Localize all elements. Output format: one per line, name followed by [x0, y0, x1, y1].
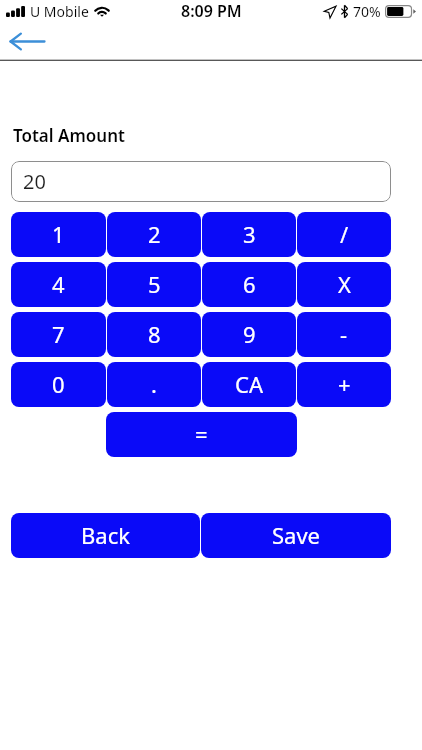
staticText: CA: [235, 369, 263, 399]
button[interactable]: X: [297, 262, 391, 307]
staticText: 7: [52, 319, 65, 349]
staticText: 20: [23, 168, 46, 195]
button[interactable]: 9: [202, 312, 296, 357]
button[interactable]: 0: [11, 362, 106, 407]
button[interactable]: 1: [11, 212, 106, 257]
staticText: X: [338, 269, 351, 299]
staticText: 1: [52, 219, 65, 249]
staticText: /: [340, 219, 349, 249]
button[interactable]: 6: [202, 262, 296, 307]
button[interactable]: =: [106, 412, 297, 457]
staticText: -: [340, 319, 348, 349]
staticText: U Mobile: [30, 2, 89, 21]
button[interactable]: 7: [11, 312, 106, 357]
button[interactable]: 4: [11, 262, 106, 307]
button[interactable]: CA: [202, 362, 296, 407]
button[interactable]: 8: [107, 312, 201, 357]
staticText: 0: [52, 369, 65, 399]
staticText: 4: [52, 269, 65, 299]
staticText: Back: [81, 520, 130, 550]
staticText: Save: [272, 520, 321, 550]
button[interactable]: /: [297, 212, 391, 257]
staticText: +: [338, 369, 351, 399]
button[interactable]: Save: [201, 513, 391, 558]
staticText: 70%: [353, 2, 381, 21]
button[interactable]: .: [107, 362, 201, 407]
staticText: 8:09 PM: [181, 0, 242, 22]
button[interactable]: 2: [107, 212, 201, 257]
staticText: 5: [148, 269, 161, 299]
staticText: 6: [243, 269, 256, 299]
staticText: 3: [243, 219, 256, 249]
staticText: 9: [243, 319, 256, 349]
button[interactable]: 20: [11, 161, 391, 202]
staticText: =: [195, 419, 208, 449]
button[interactable]: Back: [4, 26, 50, 56]
staticText: Total Amount: [13, 124, 125, 147]
button[interactable]: 5: [107, 262, 201, 307]
button[interactable]: Back: [11, 513, 200, 558]
button[interactable]: 3: [202, 212, 296, 257]
button[interactable]: -: [297, 312, 391, 357]
button[interactable]: +: [297, 362, 391, 407]
staticText: .: [151, 369, 157, 399]
staticText: 2: [148, 219, 161, 249]
staticText: 8: [148, 319, 161, 349]
